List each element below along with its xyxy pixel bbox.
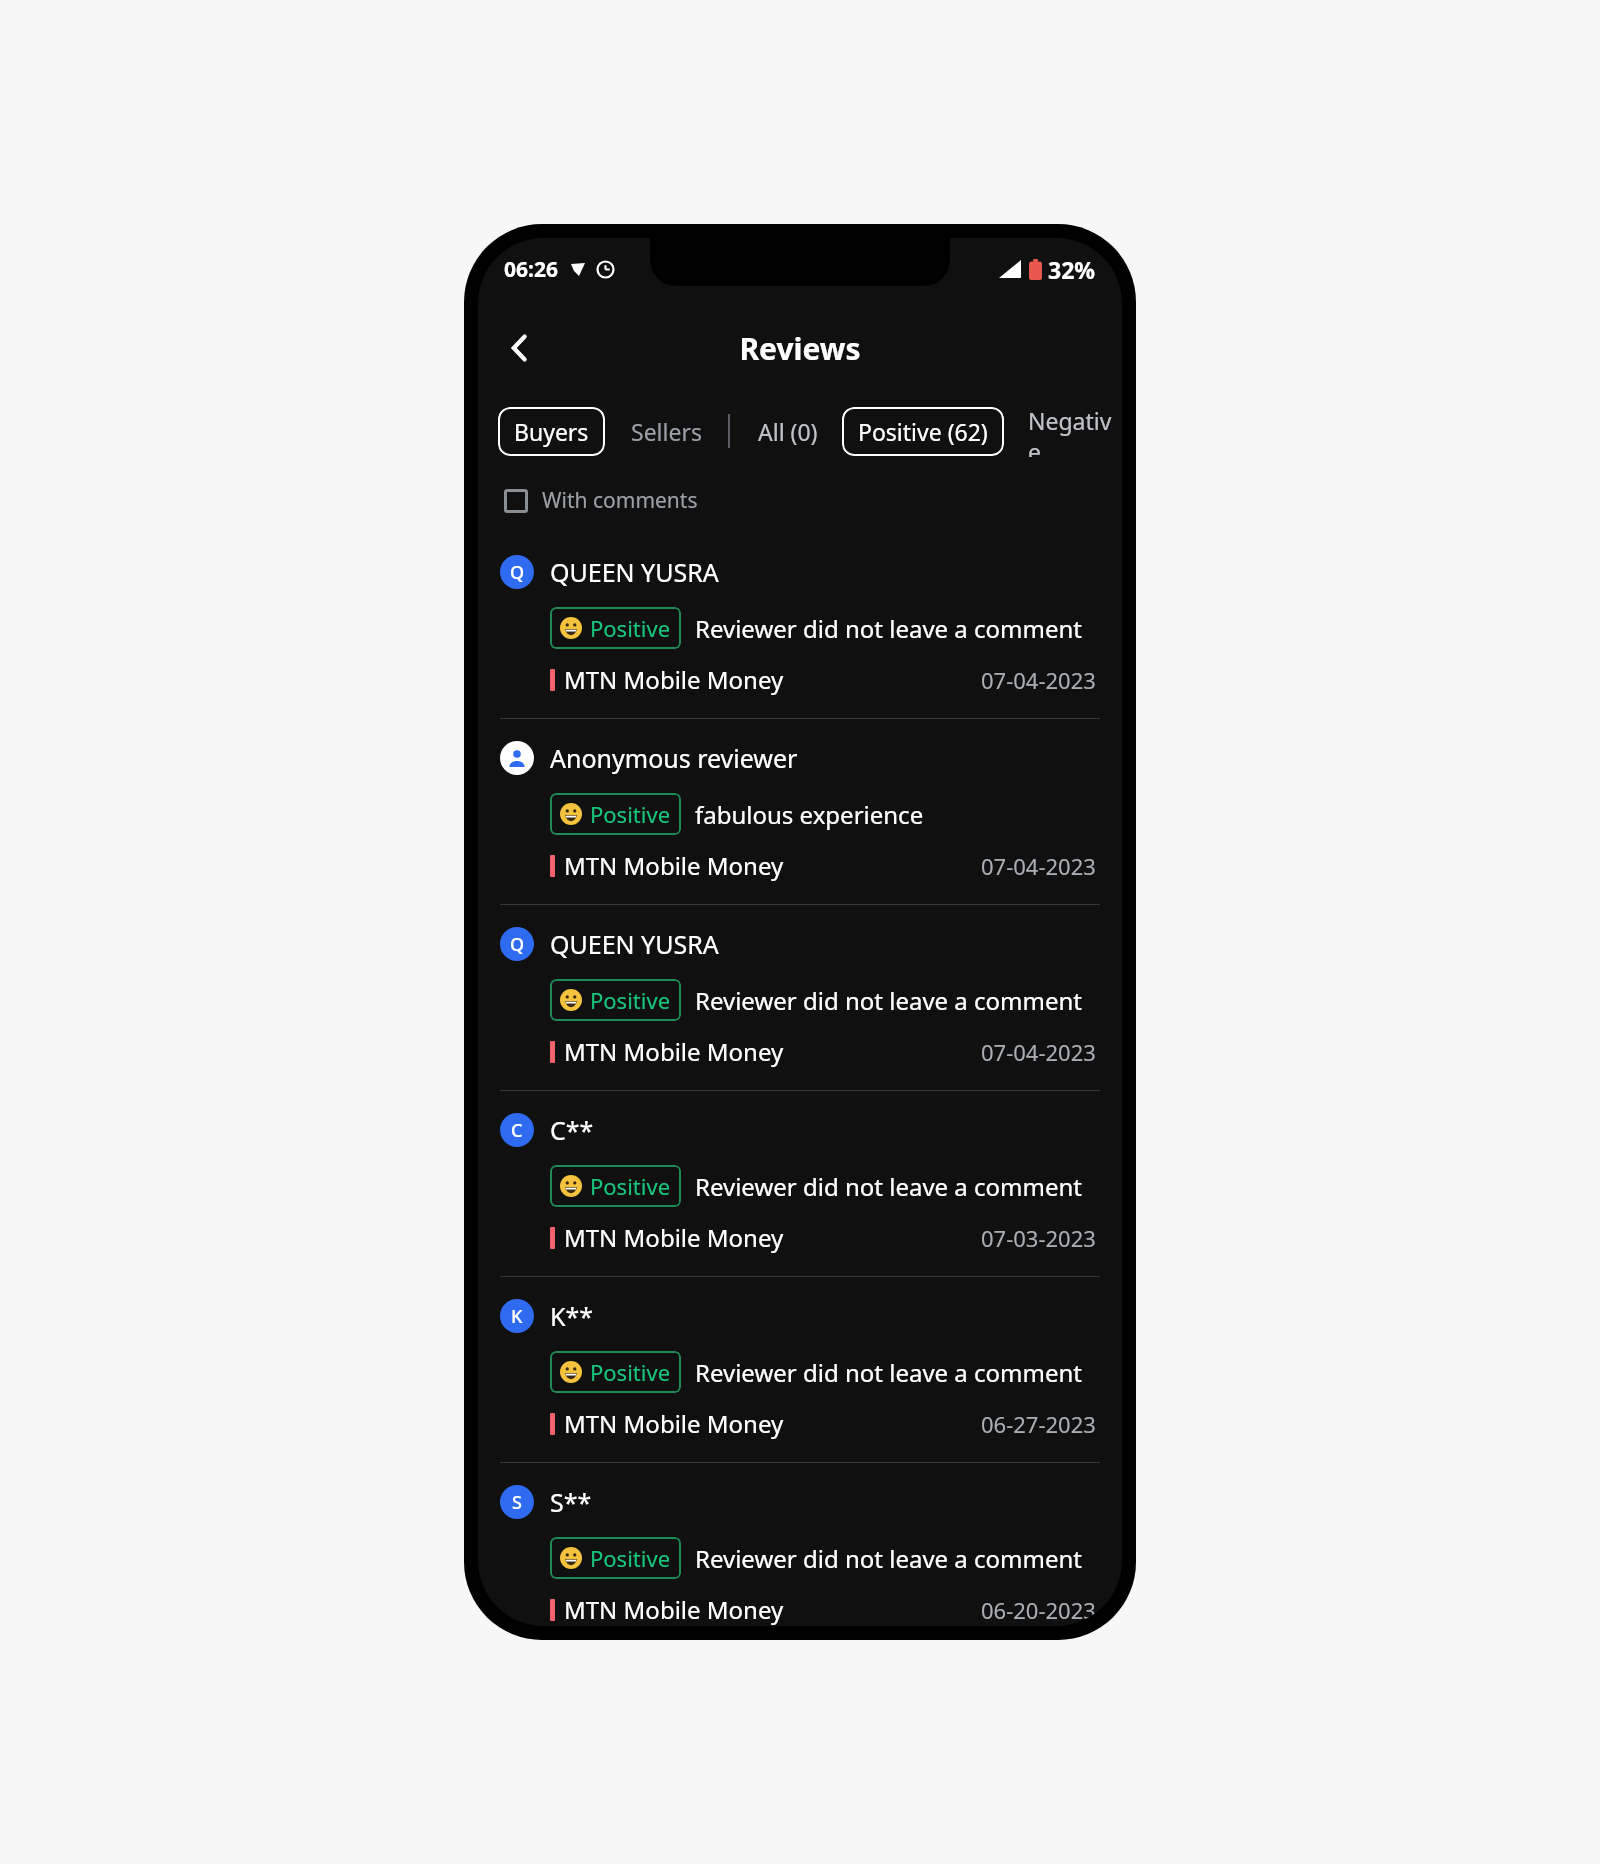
- staticText: MTN Mobile Money: [564, 1221, 784, 1254]
- staticText: 07-04-2023: [981, 665, 1096, 695]
- staticText: 06:26: [504, 255, 558, 284]
- staticText: 32%: [1048, 254, 1096, 285]
- staticText: MTN Mobile Money: [564, 1035, 784, 1068]
- staticText: Q: [510, 560, 525, 585]
- staticText: QUEEN YUSRA: [550, 555, 719, 589]
- staticText: Anonymous reviewer: [550, 741, 798, 775]
- staticText: Positive: [590, 1357, 671, 1387]
- staticText: K**: [550, 1299, 594, 1333]
- staticText: Reviewer did not leave a comment: [695, 984, 1082, 1017]
- staticText: C: [511, 1118, 523, 1143]
- staticText: Positive (62): [858, 416, 988, 447]
- button[interactable]: S: [478, 1485, 1122, 1626]
- button[interactable]: Positive (62): [842, 407, 1004, 456]
- staticText: 07-03-2023: [981, 1223, 1096, 1253]
- staticText: 06-20-2023: [981, 1595, 1096, 1625]
- staticText: Reviewer did not leave a comment: [695, 1356, 1082, 1389]
- button[interactable]: Q: [478, 555, 1122, 741]
- staticText: Positive: [590, 1543, 671, 1573]
- button[interactable]: Negative: [1024, 396, 1122, 466]
- staticText: K: [511, 1304, 523, 1329]
- staticText: MTN Mobile Money: [564, 1593, 784, 1626]
- staticText: Buyers: [514, 416, 589, 447]
- staticText: 07-04-2023: [981, 851, 1096, 881]
- staticText: Positive: [590, 1171, 671, 1201]
- staticText: S**: [550, 1485, 592, 1519]
- staticText: Reviews: [739, 328, 861, 369]
- staticText: All (0): [758, 416, 818, 447]
- staticText: Reviewer did not leave a comment: [695, 1170, 1082, 1203]
- staticText: QUEEN YUSRA: [550, 927, 719, 961]
- button[interactable]: Back: [492, 320, 548, 376]
- button[interactable]: Sellers: [627, 407, 706, 456]
- button[interactable]: C: [478, 1113, 1122, 1299]
- staticText: MTN Mobile Money: [564, 849, 784, 882]
- staticText: 06-27-2023: [981, 1409, 1096, 1439]
- button[interactable]: K: [478, 1299, 1122, 1485]
- staticText: Q: [510, 932, 525, 957]
- staticText: 07-04-2023: [981, 1037, 1096, 1067]
- staticText: Positive: [590, 985, 671, 1015]
- staticText: MTN Mobile Money: [564, 663, 784, 696]
- staticText: fabulous experience: [695, 798, 924, 831]
- staticText: Sellers: [631, 416, 702, 447]
- staticText: MTN Mobile Money: [564, 1407, 784, 1440]
- staticText: Reviewer did not leave a comment: [695, 612, 1082, 645]
- button[interactable]: Buyers: [498, 407, 605, 456]
- staticText: With comments: [542, 486, 698, 515]
- button[interactable]: Q: [478, 927, 1122, 1113]
- button[interactable]: Anonymous reviewer: [478, 741, 1122, 927]
- button[interactable]: All (0): [754, 407, 822, 456]
- staticText: C**: [550, 1113, 594, 1147]
- button[interactable]: With comments: [500, 480, 702, 521]
- staticText: Reviewer did not leave a comment: [695, 1542, 1082, 1575]
- staticText: Negative: [1028, 405, 1118, 457]
- staticText: Positive: [590, 799, 671, 829]
- staticText: Positive: [590, 613, 671, 643]
- staticText: S: [512, 1490, 522, 1515]
